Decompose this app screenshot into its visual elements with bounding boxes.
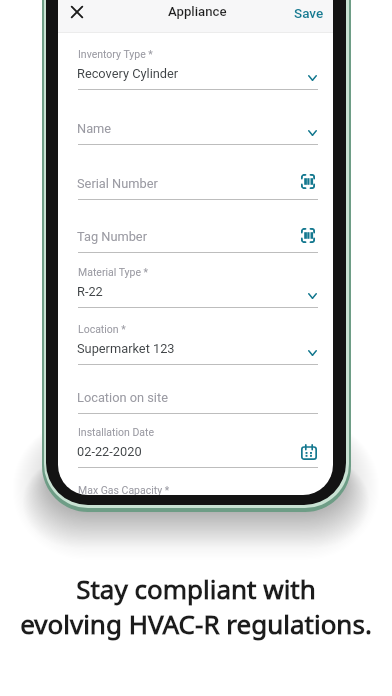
staticText: Installation Date xyxy=(78,426,155,438)
staticText: Recovery Cylinder xyxy=(77,66,179,81)
staticText: Inventory Type * xyxy=(78,48,153,60)
button[interactable]: Open dropdown xyxy=(301,67,323,89)
button[interactable]: Open dropdown xyxy=(301,342,323,364)
staticText: 02-22-2020 xyxy=(77,444,142,459)
button[interactable]: Scan barcode xyxy=(296,223,320,247)
button[interactable]: Pick date xyxy=(297,440,321,464)
button[interactable]: Open dropdown xyxy=(301,285,323,307)
staticText: evolving HVAC-R regulations. xyxy=(20,606,372,641)
staticText: Location on site xyxy=(77,390,168,405)
staticText: Appliance xyxy=(168,4,227,19)
button[interactable]: Save xyxy=(286,0,332,27)
button[interactable]: Close xyxy=(63,0,91,26)
staticText: Max Gas Capacity * xyxy=(78,484,170,495)
staticText: R-22 xyxy=(77,284,103,299)
staticText: Material Type * xyxy=(78,266,149,278)
staticText: Stay compliant with xyxy=(76,571,316,606)
staticText: Save xyxy=(294,5,324,21)
staticText: Serial Number xyxy=(77,176,158,191)
staticText: Supermarket 123 xyxy=(77,341,175,356)
staticText: Tag Number xyxy=(77,229,147,244)
staticText: Location * xyxy=(78,323,126,335)
staticText: Name xyxy=(77,121,112,136)
button[interactable]: Scan barcode xyxy=(296,169,320,193)
button[interactable]: Open dropdown xyxy=(301,122,323,144)
